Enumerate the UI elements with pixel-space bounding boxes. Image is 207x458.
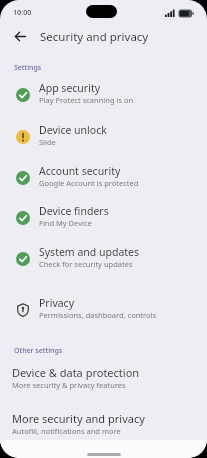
staticText: Play Protect scanning is on — [39, 95, 134, 105]
button[interactable]: Account security — [0, 157, 207, 198]
staticText: Google Account is protected — [39, 178, 139, 188]
staticText: More security and privacy — [12, 411, 145, 426]
staticText: Device finders — [39, 204, 109, 218]
button[interactable]: App security — [0, 74, 207, 115]
button[interactable]: More security and privacy — [0, 411, 207, 436]
staticText: Device & data protection — [12, 365, 140, 380]
staticText: Security and privacy — [40, 29, 149, 45]
staticText: Find My Device — [39, 218, 92, 228]
staticText: System and updates — [39, 245, 140, 259]
button[interactable]: Privacy — [0, 289, 207, 330]
staticText: Autofill, notifications and more — [12, 426, 121, 436]
staticText: Privacy — [39, 296, 75, 310]
staticText: App security — [39, 81, 101, 95]
staticText: Other settings — [14, 346, 63, 356]
staticText: Slide — [39, 137, 56, 147]
button[interactable]: Device & data protection — [0, 365, 207, 390]
staticText: 10:00 — [13, 7, 32, 17]
button[interactable] — [0, 22, 40, 51]
staticText: Device unlock — [39, 123, 107, 137]
staticText: Permissions, dashboard, controls — [39, 310, 157, 320]
button[interactable]: Device finders — [0, 197, 207, 238]
button[interactable]: Device unlock — [0, 116, 207, 157]
staticText: More security & privacy features — [12, 380, 126, 390]
button[interactable]: System and updates — [0, 238, 207, 279]
staticText: Check for security updates — [39, 259, 133, 269]
staticText: Account security — [39, 164, 121, 178]
staticText: Settings — [14, 63, 42, 73]
